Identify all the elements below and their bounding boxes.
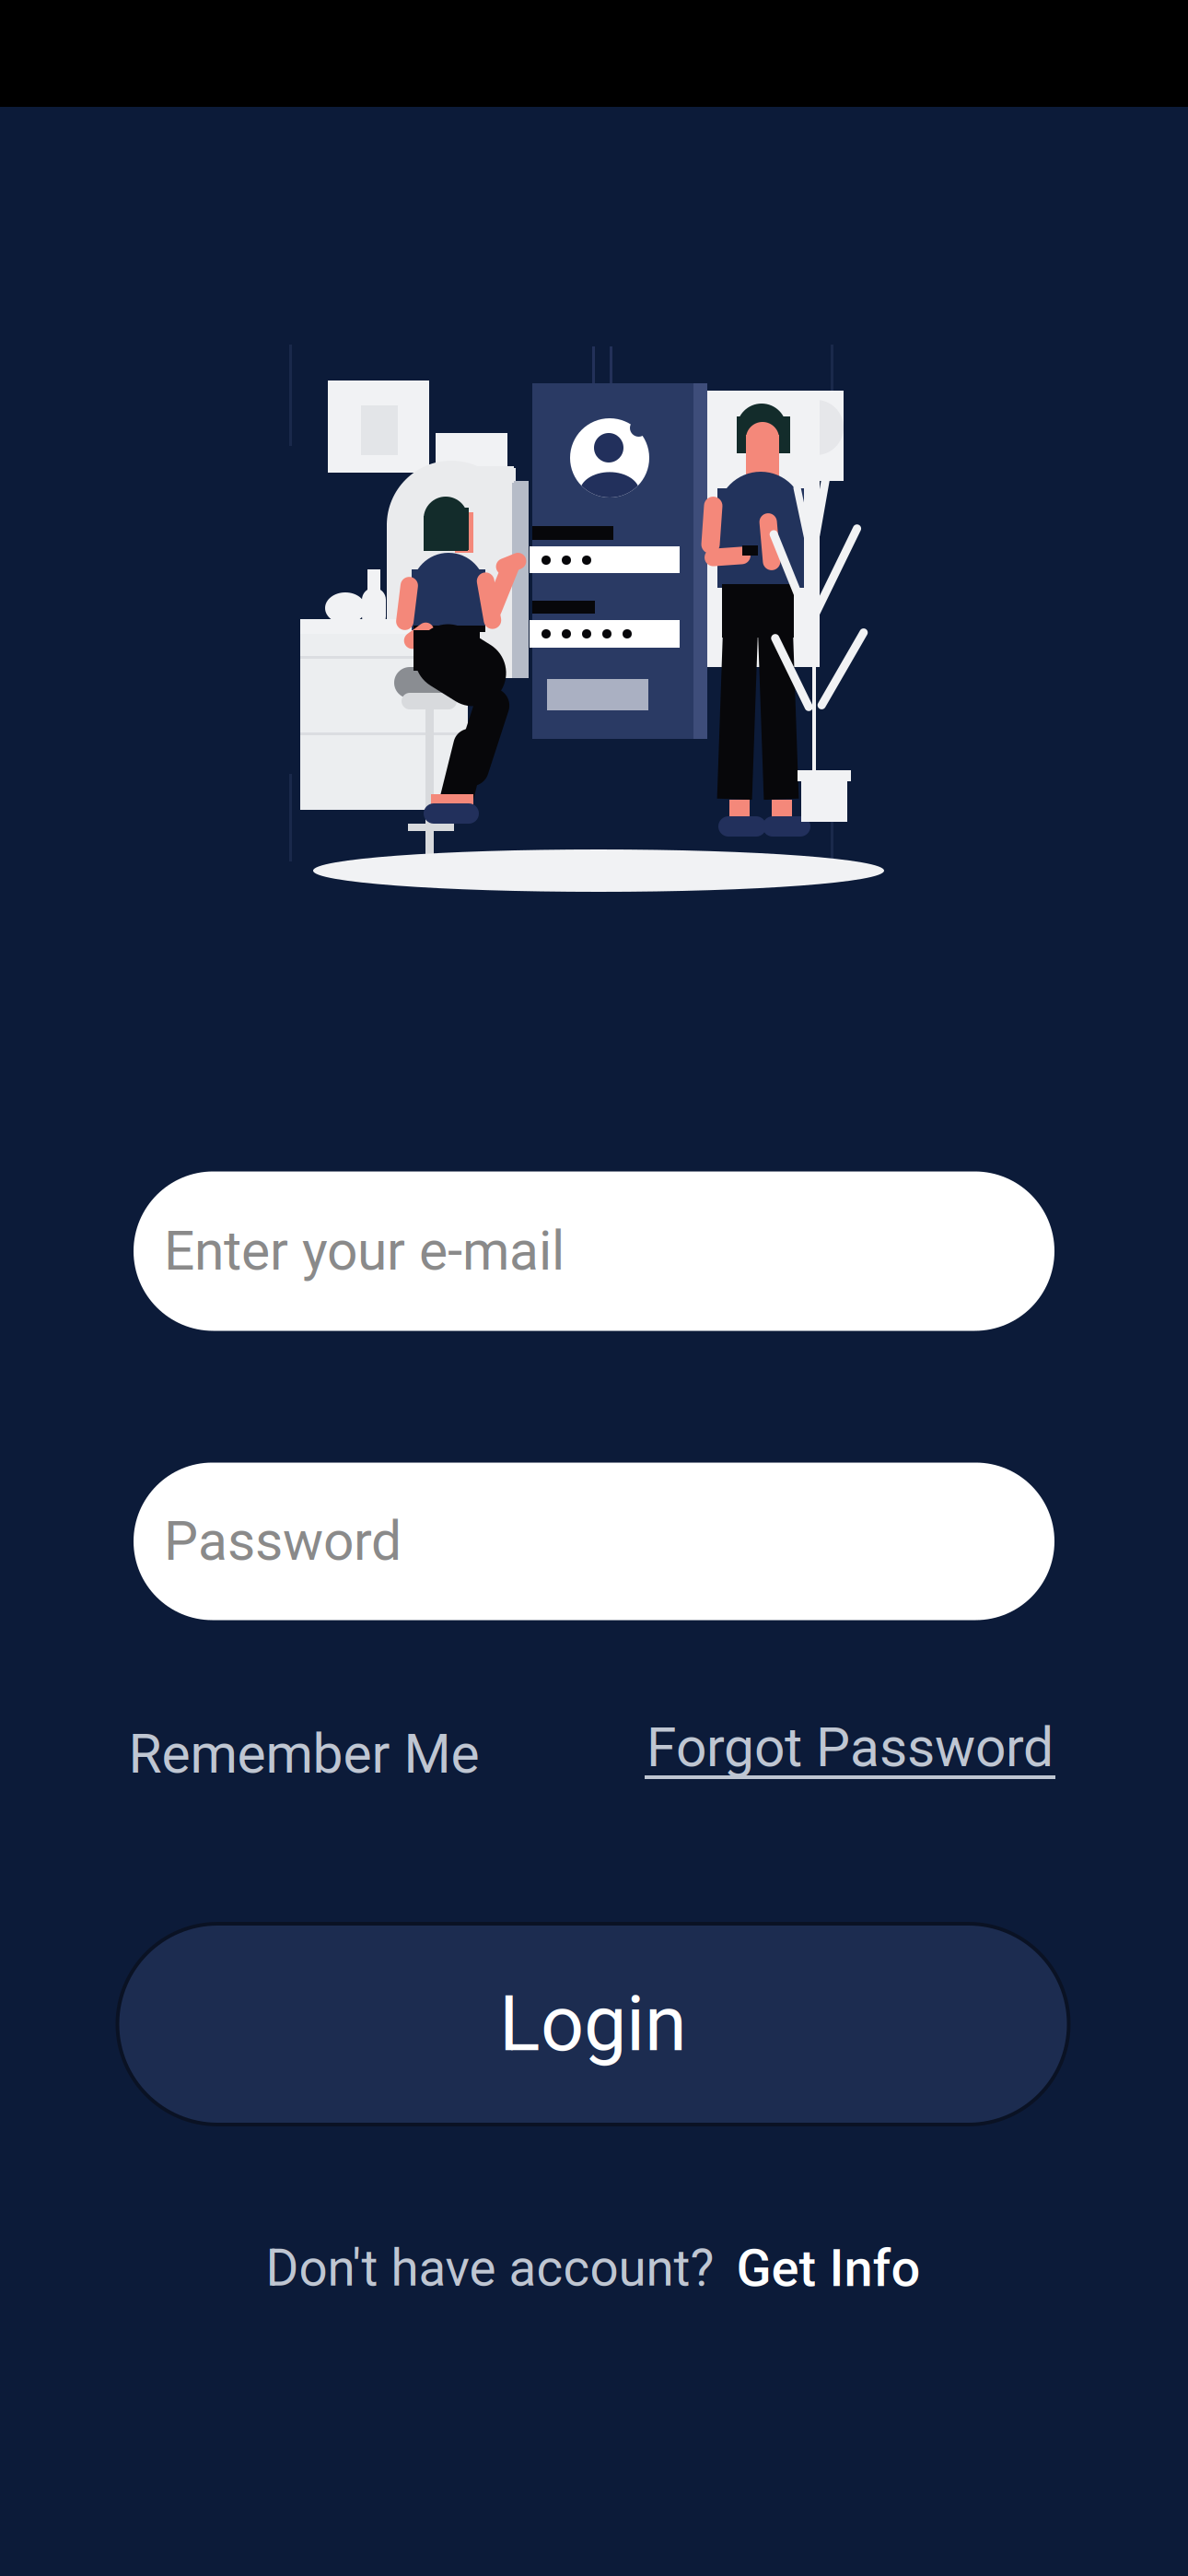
button[interactable]: Password — [134, 1463, 1054, 1620]
button[interactable]: Remember Me — [128, 1722, 479, 1786]
staticText: Password — [164, 1510, 402, 1573]
button[interactable]: Login — [117, 1924, 1069, 2125]
staticText: Remember Me — [128, 1722, 479, 1786]
staticText: Enter your e-mail — [164, 1219, 565, 1283]
staticText: Forgot Password — [646, 1716, 1054, 1779]
button[interactable]: Enter your e-mail — [134, 1171, 1054, 1331]
staticText: Don't have account? — [266, 2239, 714, 2298]
button[interactable]: Forgot Password — [645, 1716, 1055, 1779]
button[interactable]: Don't have account? — [266, 2238, 920, 2298]
staticText: Login — [499, 1980, 687, 2069]
staticText: Get Info — [736, 2238, 920, 2298]
